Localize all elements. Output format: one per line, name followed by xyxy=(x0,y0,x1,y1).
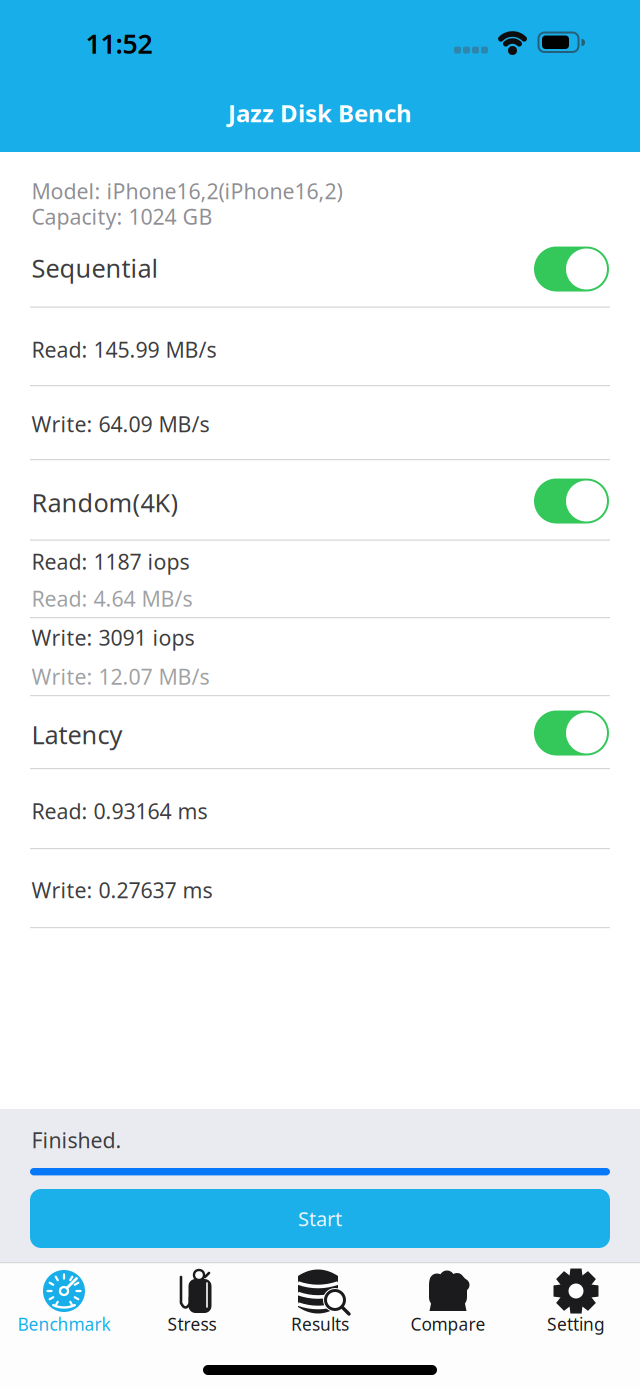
button[interactable]: Start xyxy=(30,1189,610,1248)
staticText: Write: 3091 iops xyxy=(31,623,194,652)
staticText: Compare xyxy=(410,1312,485,1335)
staticText: Write: 0.27637 ms xyxy=(31,876,212,904)
staticText: Read: 145.99 MB/s xyxy=(31,335,216,364)
staticText: Write: 12.07 MB/s xyxy=(31,662,209,691)
staticText: Read: 1187 iops xyxy=(31,547,189,576)
staticText: Sequential xyxy=(31,251,158,285)
staticText: Write: 64.09 MB/s xyxy=(31,410,209,438)
button[interactable]: Stress xyxy=(129,1263,255,1363)
button[interactable]: Setting xyxy=(513,1263,639,1363)
staticText: Latency xyxy=(31,718,122,751)
staticText: Jazz Disk Bench xyxy=(228,97,412,129)
staticText: Start xyxy=(298,1205,342,1232)
staticText: Stress xyxy=(167,1312,216,1335)
button[interactable]: Benchmark xyxy=(1,1263,127,1363)
staticText: Setting xyxy=(547,1312,605,1335)
button[interactable]: Results xyxy=(257,1263,383,1363)
staticText: Benchmark xyxy=(17,1312,110,1335)
staticText: Random(4K) xyxy=(31,486,178,519)
staticText: Capacity: 1024 GB xyxy=(31,202,212,231)
button[interactable]: Random(4K) xyxy=(534,478,609,523)
button[interactable]: Compare xyxy=(385,1263,511,1363)
staticText: Read: 4.64 MB/s xyxy=(31,584,192,613)
staticText: Model: iPhone16,2(iPhone16,2) xyxy=(31,177,342,205)
staticText: Results xyxy=(291,1312,349,1335)
staticText: Read: 0.93164 ms xyxy=(31,797,207,825)
staticText: Finished. xyxy=(31,1126,121,1154)
button[interactable]: Sequential xyxy=(534,246,609,291)
button[interactable]: Latency xyxy=(534,710,609,755)
staticText: 11:52 xyxy=(85,26,152,61)
